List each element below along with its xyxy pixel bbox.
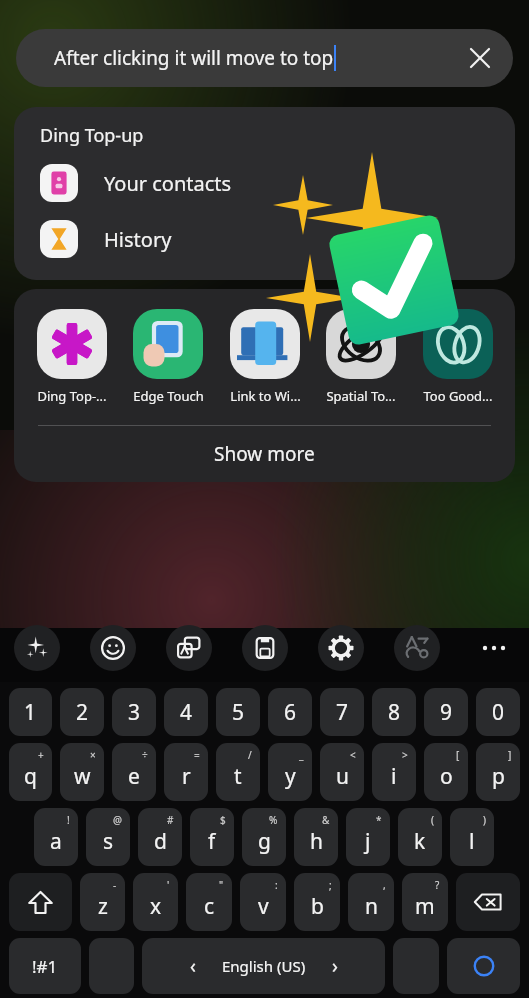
staticText: Spatial To... xyxy=(326,387,396,405)
button[interactable]: / xyxy=(216,743,260,801)
button[interactable]: _ xyxy=(268,743,312,801)
button[interactable]: 0 xyxy=(476,688,520,736)
button[interactable]: Your contacts xyxy=(14,164,515,202)
button[interactable]: 1 xyxy=(9,688,52,736)
button[interactable]: Backspace xyxy=(456,873,520,931)
button[interactable]: Edge Touch xyxy=(121,309,215,405)
staticText: v xyxy=(258,892,269,921)
button[interactable]: ) xyxy=(450,808,494,866)
button[interactable]: 9 xyxy=(424,688,468,736)
button[interactable]: * xyxy=(346,808,390,866)
staticText: : xyxy=(275,878,278,892)
staticText: , xyxy=(383,878,386,892)
button[interactable]: < xyxy=(320,743,364,801)
staticText: Too Good... xyxy=(423,387,493,405)
button[interactable]: Show more xyxy=(14,426,515,482)
staticText: / xyxy=(248,748,252,762)
button[interactable]: ÷ xyxy=(112,743,156,801)
button[interactable]: ; xyxy=(294,873,340,931)
staticText: 0 xyxy=(492,698,505,727)
staticText: d xyxy=(154,827,167,856)
button[interactable]: : xyxy=(240,873,286,931)
button[interactable]: [ xyxy=(424,743,468,801)
staticText: # xyxy=(167,813,174,827)
button[interactable]: Emoji xyxy=(90,625,136,671)
button[interactable]: Clipboard xyxy=(242,625,288,671)
staticText: n xyxy=(365,892,378,921)
staticText: ] xyxy=(508,748,512,762)
button[interactable]: = xyxy=(164,743,208,801)
button[interactable]: @ xyxy=(86,808,130,866)
button[interactable]: Autocorrect xyxy=(394,625,440,671)
button[interactable]: % xyxy=(242,808,286,866)
button[interactable]: Clear text xyxy=(457,35,503,81)
button[interactable]: Settings xyxy=(318,625,364,671)
button[interactable]: > xyxy=(372,743,416,801)
staticText: & xyxy=(322,813,330,827)
button[interactable]: !#1 xyxy=(9,938,81,994)
staticText: × xyxy=(90,748,96,762)
button[interactable]: 6 xyxy=(268,688,312,736)
button[interactable]: AI suggest xyxy=(14,625,60,671)
staticText: ( xyxy=(431,813,434,827)
staticText: + xyxy=(38,748,44,762)
button[interactable]: 5 xyxy=(216,688,260,736)
button[interactable]: Spatial To... xyxy=(314,309,408,405)
staticText: Show more xyxy=(214,441,315,467)
button[interactable]: 8 xyxy=(372,688,416,736)
button[interactable]: ‹ xyxy=(142,938,385,994)
button[interactable]: , xyxy=(348,873,394,931)
staticText: ) xyxy=(483,813,486,827)
button[interactable] xyxy=(89,938,134,994)
staticText: Ding Top-... xyxy=(37,387,107,405)
staticText: " xyxy=(219,878,224,892)
staticText: = xyxy=(194,748,200,762)
button[interactable]: Link to Wi... xyxy=(218,309,312,405)
staticText: 9 xyxy=(440,698,453,727)
staticText: < xyxy=(350,748,356,762)
button[interactable]: ] xyxy=(476,743,520,801)
button[interactable]: 3 xyxy=(112,688,156,736)
button[interactable]: " xyxy=(186,873,232,931)
staticText: > xyxy=(402,748,408,762)
button[interactable]: - xyxy=(80,873,125,931)
staticText: r xyxy=(182,762,191,791)
button[interactable] xyxy=(393,938,439,994)
button[interactable]: 7 xyxy=(320,688,364,736)
button[interactable]: ( xyxy=(398,808,442,866)
button[interactable]: Voice input xyxy=(447,938,520,994)
staticText: @ xyxy=(113,813,122,827)
staticText: p xyxy=(492,762,505,791)
button[interactable]: + xyxy=(9,743,52,801)
staticText: 3 xyxy=(128,698,141,727)
staticText: › xyxy=(332,953,338,979)
staticText: 7 xyxy=(336,698,349,727)
staticText: a xyxy=(50,827,62,856)
staticText: _ xyxy=(299,748,304,762)
button[interactable]: After clicking it will move to top xyxy=(16,29,513,87)
button[interactable]: 4 xyxy=(164,688,208,736)
button[interactable]: ? xyxy=(402,873,448,931)
button[interactable]: ' xyxy=(133,873,178,931)
staticText: y xyxy=(285,762,296,791)
button[interactable]: 2 xyxy=(60,688,104,736)
staticText: Ding Top-up xyxy=(40,123,144,148)
button[interactable]: × xyxy=(60,743,104,801)
button[interactable]: Ding Top-... xyxy=(25,309,119,405)
staticText: o xyxy=(440,762,453,791)
staticText: - xyxy=(113,878,117,892)
button[interactable]: & xyxy=(294,808,338,866)
button[interactable]: ! xyxy=(34,808,78,866)
button[interactable]: More options xyxy=(471,625,517,671)
staticText: ! xyxy=(67,813,70,827)
button[interactable]: # xyxy=(138,808,182,866)
button[interactable]: Shift xyxy=(9,873,72,931)
button[interactable]: $ xyxy=(190,808,234,866)
staticText: j xyxy=(365,827,371,856)
button[interactable]: Translate xyxy=(166,625,212,671)
staticText: m xyxy=(415,892,435,921)
staticText: Edge Touch xyxy=(133,387,204,405)
button[interactable]: Too Good... xyxy=(411,309,505,405)
button[interactable]: History xyxy=(14,220,515,258)
staticText: % xyxy=(269,813,278,827)
